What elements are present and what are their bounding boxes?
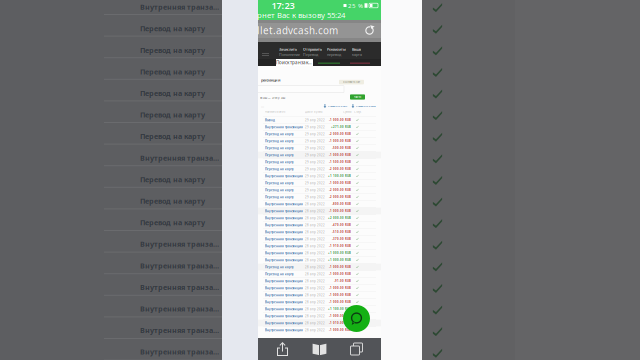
button[interactable]: Внутренняя транзакция: [258, 222, 381, 229]
button[interactable]: Перевод на карту: [258, 152, 381, 159]
staticText: перевод: [327, 52, 341, 57]
staticText: -2 000.00 RUB: [329, 132, 351, 136]
staticText: Перевод на карту: [140, 45, 205, 55]
staticText: 17:23: [271, 0, 294, 12]
button[interactable]: Внутренняя транзакция: [258, 173, 381, 180]
button[interactable]: Перевод на карту: [258, 187, 381, 194]
button[interactable]: Внутренняя транзакция: [258, 285, 381, 292]
staticText: Внутренняя транзакция: [265, 244, 303, 248]
staticText: 29 апр 2022: [305, 153, 325, 157]
staticText: -370.00 RUB: [332, 237, 351, 241]
staticText: -1 000.00 RUB: [329, 209, 351, 213]
staticText: карта: [352, 52, 362, 57]
staticText: -1 000.00 RUB: [329, 153, 351, 157]
staticText: Дата и время: [305, 110, 323, 114]
button[interactable]: Внутренняя транзакция: [258, 236, 381, 243]
staticText: Внутренняя транзакция: [265, 174, 303, 178]
staticText: -1 500.00 RUB: [329, 160, 351, 164]
staticText: Пополнение: [279, 52, 300, 57]
button[interactable]: Внутренняя транзакция: [258, 250, 381, 257]
button[interactable]: Перевод на карту: [258, 180, 381, 187]
button[interactable]: Внутренняя транзакция: [258, 292, 381, 299]
staticText: +2 000.00 RUB: [328, 216, 351, 220]
button[interactable]: Перевод на карту: [258, 194, 381, 201]
staticText: 25 %: [348, 1, 363, 10]
staticText: 28 апр 2022: [305, 314, 325, 318]
staticText: -1 000.00 RUB: [329, 181, 351, 185]
button[interactable]: Внутренняя транзакция: [258, 320, 381, 327]
button[interactable]: Перевод на карту: [258, 264, 381, 271]
button[interactable]: Внутренняя транзакция: [258, 208, 381, 215]
staticText: -800.00 RUB: [332, 202, 351, 206]
button[interactable]: Внутренняя транзакция: [258, 215, 381, 222]
button[interactable]: Tabs: [350, 342, 363, 355]
button[interactable]: Внутренняя транзакция: [258, 327, 381, 334]
button[interactable]: Перевод на карту: [258, 271, 381, 278]
staticText: Сохранить в PDF: [328, 104, 347, 108]
staticText: Перевод на карту: [140, 131, 205, 141]
staticText: -91.00 RUB: [334, 279, 351, 283]
button[interactable]: Внутренняя транзакция: [258, 313, 381, 320]
staticText: Найти: [353, 95, 361, 99]
staticText: 28 апр 2022: [305, 202, 325, 206]
button[interactable]: Перевод на карту: [258, 159, 381, 166]
staticText: Внутренняя транзакц: [140, 153, 220, 163]
button[interactable]: Внутренняя транзакция: [258, 257, 381, 264]
staticText: Внутренняя транзакц: [140, 347, 220, 357]
staticText: Перевод на карту: [265, 146, 294, 150]
staticText: Внутренняя транзакция: [265, 125, 303, 129]
button[interactable]: Выставить счёт: [339, 80, 364, 84]
button[interactable]: Вывод: [258, 117, 381, 124]
staticText: Перевод: [303, 52, 318, 57]
button[interactable]: Внутренняя транзакция: [258, 201, 381, 208]
staticText: Внутренняя транзакция: [265, 300, 303, 304]
staticText: 28 апр 2022: [305, 272, 325, 276]
staticText: -2 000.00 RUB: [329, 195, 351, 199]
staticText: Перевод на карту: [265, 265, 294, 269]
staticText: 28 апр 2022: [305, 244, 325, 248]
staticText: Перевод на карту: [265, 181, 294, 185]
staticText: 29 апр 2022: [305, 167, 325, 171]
staticText: Внутренняя транзакция: [265, 293, 303, 297]
button[interactable]: Share: [276, 341, 289, 356]
button[interactable]: Внутренняя транзакция: [258, 278, 381, 285]
button[interactable]: Внутренняя транзакция: [258, 229, 381, 236]
staticText: Перевод на карту: [140, 67, 205, 76]
staticText: ва 2022 — 29 апр 2022: [260, 96, 285, 100]
button[interactable]: Chat: [343, 305, 370, 332]
button[interactable]: Найти: [350, 94, 365, 100]
button[interactable]: Внутренняя транзакция: [258, 299, 381, 306]
staticText: Ваша: [352, 47, 361, 52]
staticText: +1 100.00 RUB: [328, 174, 351, 178]
button[interactable]: Перевод на карту: [258, 131, 381, 138]
staticText: 28 апр 2022: [305, 265, 325, 269]
button[interactable]: Перевод на карту: [258, 166, 381, 173]
button[interactable]: Bookmarks: [312, 342, 327, 355]
staticText: Выставить счёт: [343, 80, 360, 84]
staticText: …: [261, 103, 264, 108]
staticText: 29 апр 2022: [305, 174, 325, 178]
staticText: Перевод на карту: [265, 188, 294, 192]
staticText: 29 апр 2022: [305, 139, 325, 143]
staticText: Перевод на карту: [140, 196, 205, 206]
staticText: 29 апр 2022: [305, 188, 325, 192]
staticText: Сумма: [343, 110, 351, 114]
staticText: Внутренняя транзакция: [265, 230, 303, 234]
staticText: 28 апр 2022: [305, 286, 325, 290]
staticText: -500.00 RUB: [332, 146, 351, 150]
staticText: 28 апр 2022: [305, 328, 325, 332]
button[interactable]: Внутренняя транзакция: [258, 306, 381, 313]
staticText: +271.00 RUB: [331, 125, 351, 129]
staticText: Внутренняя транзакция: [265, 321, 303, 325]
button[interactable]: Внутренняя транзакция: [258, 243, 381, 250]
staticText: 28 апр 2022: [305, 216, 325, 220]
button[interactable]: Перевод на карту: [258, 145, 381, 152]
staticText: Внутренняя транзакция: [265, 258, 303, 262]
staticText: Перевод на карту: [140, 110, 205, 120]
staticText: Перевод на карту: [265, 132, 294, 136]
staticText: Внутренняя транзакция: [265, 202, 303, 206]
button[interactable]: Внутренняя транзакция: [258, 124, 381, 131]
button[interactable]: Перевод на карту: [258, 138, 381, 145]
staticText: 29 апр 2022: [305, 160, 325, 164]
staticText: -1 910.00 RUB: [329, 244, 351, 248]
